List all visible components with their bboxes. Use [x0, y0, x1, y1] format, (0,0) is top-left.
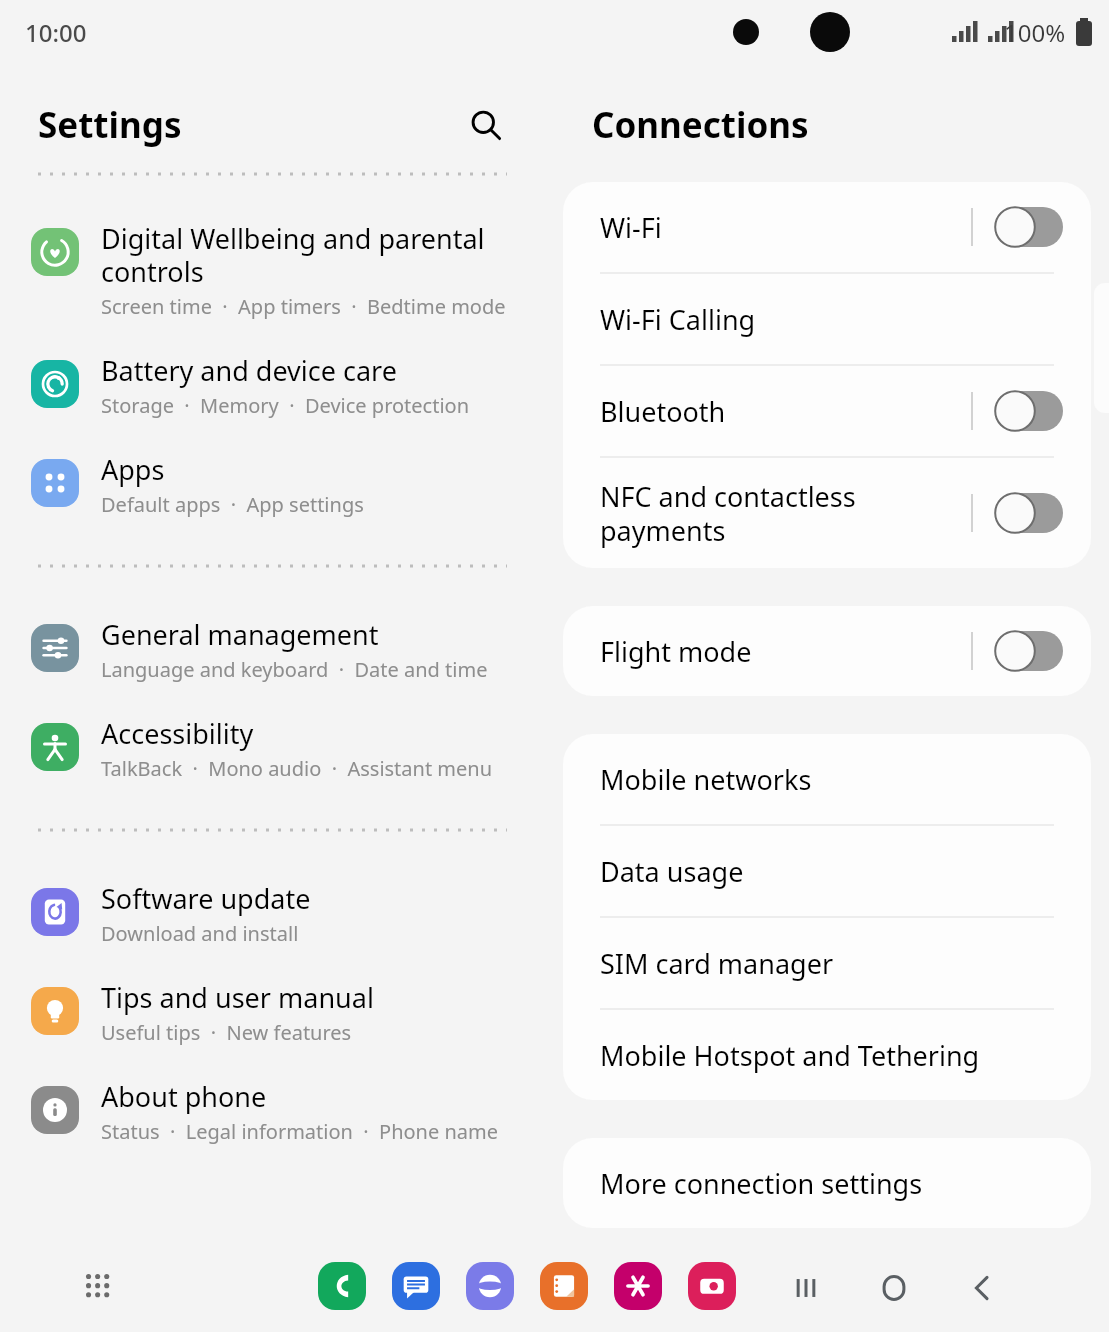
staticText: Language and keyboard · Date and time: [101, 656, 488, 683]
button[interactable]: Toggle: [995, 493, 1063, 533]
button[interactable]: browser: [466, 1262, 514, 1310]
button[interactable]: notes: [540, 1262, 588, 1310]
button[interactable]: About phone: [0, 1070, 545, 1169]
button[interactable]: Software update: [0, 872, 545, 971]
staticText: 10:00: [25, 16, 87, 49]
staticText: Storage · Memory · Device protection: [101, 392, 470, 419]
staticText: Digital Wellbeing and parental controls: [101, 220, 485, 290]
staticText: More connection settings: [600, 1165, 1063, 1202]
button[interactable]: General management: [0, 608, 545, 707]
staticText: Mobile networks: [600, 761, 1063, 798]
staticText: Accessibility: [101, 715, 254, 752]
staticText: Software update: [101, 880, 311, 917]
button[interactable]: Data usage: [563, 826, 1091, 916]
staticText: Wi-Fi: [600, 209, 963, 246]
button[interactable]: Back: [956, 1262, 1008, 1314]
button[interactable]: camera: [688, 1262, 736, 1310]
button[interactable]: NFC and contactless payments: [563, 458, 1091, 568]
staticText: Apps: [101, 451, 165, 488]
button[interactable]: msg: [392, 1262, 440, 1310]
staticText: Connections: [592, 101, 809, 149]
button[interactable]: Tips and user manual: [0, 971, 545, 1070]
button[interactable]: Flight mode: [563, 606, 1091, 696]
button[interactable]: phone: [318, 1262, 366, 1310]
button[interactable]: Toggle: [995, 631, 1063, 671]
button[interactable]: Home: [868, 1262, 920, 1314]
staticText: Download and install: [101, 920, 299, 947]
staticText: Useful tips · New features: [101, 1019, 352, 1046]
button[interactable]: Wi-Fi: [563, 182, 1091, 272]
staticText: Status · Legal information · Phone name: [101, 1118, 499, 1145]
staticText: Flight mode: [600, 633, 963, 670]
button[interactable]: Search: [457, 96, 515, 154]
staticText: Default apps · App settings: [101, 491, 364, 518]
button[interactable]: SIM card manager: [563, 918, 1091, 1008]
staticText: Wi-Fi Calling: [600, 301, 1063, 338]
staticText: SIM card manager: [600, 945, 1063, 982]
staticText: Settings: [38, 101, 182, 149]
button[interactable]: Digital Wellbeing and parental controls: [0, 212, 545, 344]
button[interactable]: store: [614, 1262, 662, 1310]
button[interactable]: Apps: [0, 443, 545, 542]
staticText: About phone: [101, 1078, 267, 1115]
staticText: General management: [101, 616, 379, 653]
staticText: Screen time · App timers · Bedtime mode: [101, 293, 506, 320]
button[interactable]: Bluetooth: [563, 366, 1091, 456]
button[interactable]: Mobile networks: [563, 734, 1091, 824]
button[interactable]: Toggle: [995, 207, 1063, 247]
staticText: NFC and contactless payments: [600, 478, 963, 549]
staticText: Battery and device care: [101, 352, 397, 389]
staticText: Data usage: [600, 853, 1063, 890]
staticText: TalkBack · Mono audio · Assistant menu: [101, 755, 493, 782]
button[interactable]: Toggle: [995, 391, 1063, 431]
staticText: Mobile Hotspot and Tethering: [600, 1037, 1063, 1074]
staticText: 100%: [1004, 16, 1066, 49]
button[interactable]: Mobile Hotspot and Tethering: [563, 1010, 1091, 1100]
button[interactable]: Accessibility: [0, 707, 545, 806]
staticText: Bluetooth: [600, 393, 963, 430]
staticText: Tips and user manual: [101, 979, 374, 1016]
button[interactable]: Battery and device care: [0, 344, 545, 443]
button[interactable]: More connection settings: [563, 1138, 1091, 1228]
button[interactable]: Apps: [78, 1266, 120, 1308]
button[interactable]: Recents: [780, 1262, 832, 1314]
button[interactable]: Wi-Fi Calling: [563, 274, 1091, 364]
